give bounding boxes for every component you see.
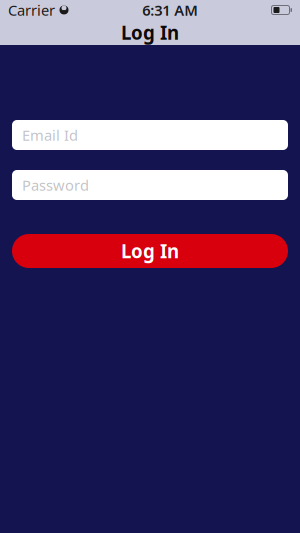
staticText: Log In	[121, 20, 179, 45]
staticText: Password	[22, 175, 89, 195]
button[interactable]: Log In	[12, 234, 288, 268]
staticText: Carrier	[8, 0, 55, 20]
staticText: Email Id	[22, 125, 78, 145]
staticText: Log In	[121, 239, 179, 263]
staticText: 6:31 AM	[142, 0, 198, 20]
